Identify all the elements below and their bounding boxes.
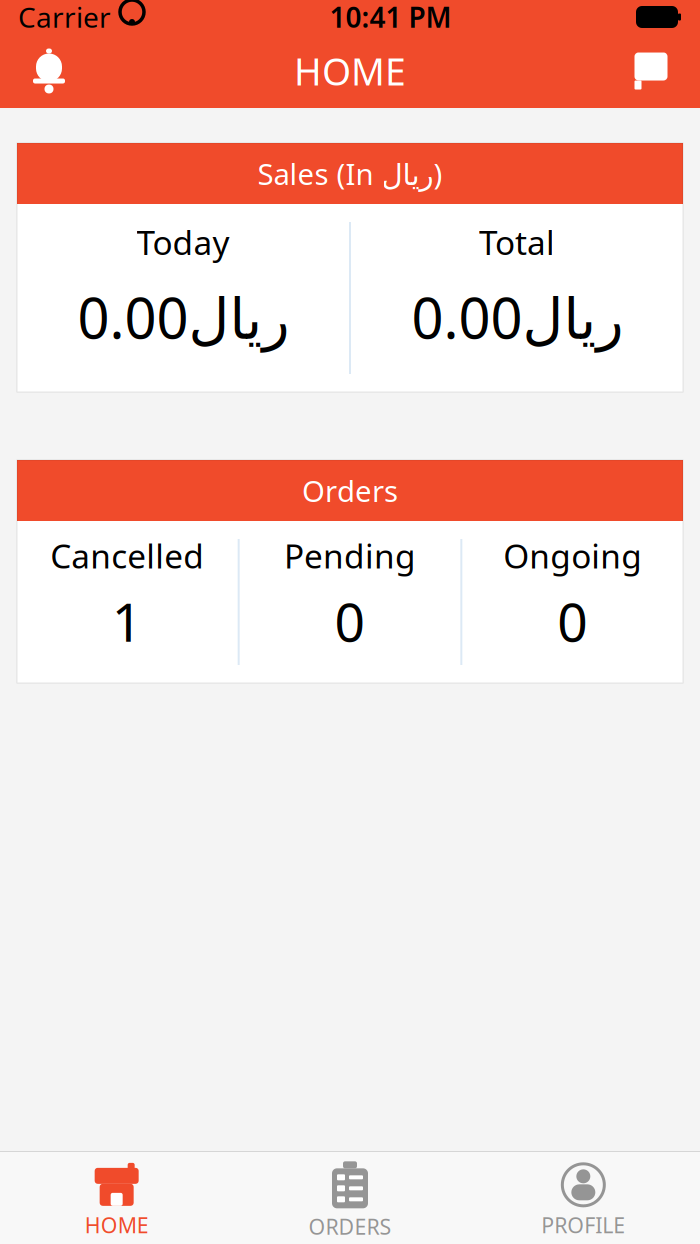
button[interactable]: Notifications — [14, 41, 84, 101]
staticText: 1 — [112, 586, 143, 656]
staticText: Carrier — [18, 0, 111, 36]
button[interactable]: PROFILE — [467, 1154, 700, 1242]
staticText: HOME — [85, 1211, 149, 1239]
staticText: Orders — [302, 471, 398, 510]
staticText: HOME — [294, 46, 406, 96]
staticText: Cancelled — [50, 533, 204, 578]
button[interactable]: Messages — [616, 41, 686, 101]
staticText: Sales (In ريال) — [257, 154, 442, 193]
staticText: 0 — [334, 586, 365, 656]
button[interactable]: HOME — [0, 1154, 233, 1242]
button[interactable]: ORDERS — [233, 1154, 467, 1242]
staticText: Ongoing — [503, 533, 642, 578]
staticText: 10:41 PM — [329, 0, 451, 36]
staticText: PROFILE — [541, 1211, 625, 1239]
staticText: ريال0.00 — [411, 280, 623, 354]
staticText: ريال0.00 — [77, 280, 289, 354]
staticText: Pending — [284, 533, 416, 578]
staticText: Today — [136, 220, 229, 264]
staticText: ORDERS — [308, 1212, 391, 1241]
staticText: 0 — [557, 586, 588, 656]
staticText: Total — [479, 220, 555, 264]
